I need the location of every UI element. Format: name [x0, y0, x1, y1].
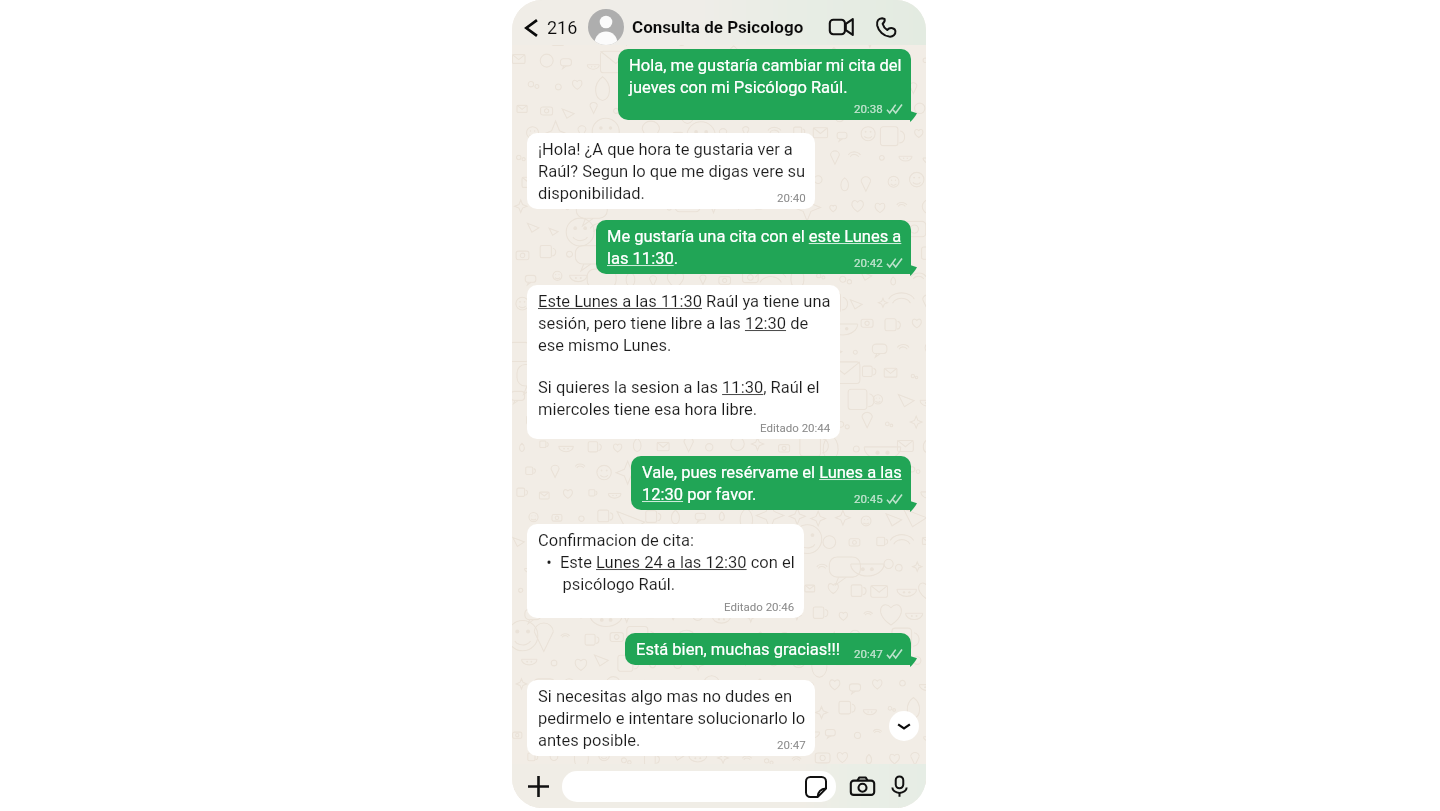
button[interactable]: Scroll to bottom — [889, 711, 919, 741]
button[interactable]: Camera — [847, 771, 877, 801]
staticText: Hola, me gustaría cambiar mi cita del ju… — [629, 54, 902, 98]
button[interactable]: ¡Hola! ¿A que hora te gustaria ver a Raú… — [527, 133, 815, 209]
staticText: Está bien, muchas gracias!!! — [636, 638, 902, 660]
staticText: ¡Hola! ¿A que hora te gustaria ver a Raú… — [538, 138, 806, 204]
staticText: Editado 20:46 — [724, 600, 795, 613]
button[interactable]: Video call — [824, 10, 858, 44]
staticText: 20:47 — [777, 738, 806, 751]
staticText: 20:42 — [854, 256, 883, 269]
staticText: Este Lunes a las 11:30 Raúl ya tiene una… — [538, 290, 831, 356]
button[interactable]: Si necesitas algo mas no dudes en pedirm… — [527, 680, 815, 756]
staticText: 20:40 — [777, 191, 806, 204]
staticText: Si quieres la sesion a las 11:30, Raúl e… — [538, 376, 820, 420]
button[interactable]: Voice message — [884, 771, 914, 801]
button[interactable]: Vale, pues resérvame el Lunes a las 12:3… — [631, 456, 911, 510]
button[interactable]: Confirmacion de cita: • Este Lunes 24 a … — [527, 524, 804, 618]
button[interactable]: Back — [523, 17, 580, 38]
staticText: Vale, pues resérvame el Lunes a las 12:3… — [642, 461, 902, 505]
button[interactable]: Voice call — [871, 12, 901, 42]
button[interactable]: Hola, me gustaría cambiar mi cita del ju… — [618, 49, 911, 120]
staticText: 20:47 — [854, 647, 883, 660]
button[interactable]: Este Lunes a las 11:30 Raúl ya tiene una… — [527, 285, 840, 439]
button[interactable]: Attach — [524, 772, 552, 800]
staticText: 20:38 — [854, 102, 883, 115]
staticText: Consulta de Psicologo — [632, 17, 804, 37]
staticText: Editado 20:44 — [760, 421, 831, 434]
staticText: Confirmacion de cita: • Este Lunes 24 a … — [538, 529, 795, 595]
button[interactable] — [562, 771, 836, 802]
button[interactable]: Me gustaría una cita con el este Lunes a… — [596, 220, 911, 274]
staticText: 20:45 — [854, 492, 883, 505]
staticText: Si necesitas algo mas no dudes en pedirm… — [538, 685, 806, 751]
button[interactable]: Está bien, muchas gracias!!! — [625, 633, 911, 665]
button[interactable]: Consulta de Psicologo — [588, 9, 804, 45]
staticText: 216 — [547, 17, 578, 38]
staticText: Me gustaría una cita con el este Lunes a… — [607, 225, 902, 269]
